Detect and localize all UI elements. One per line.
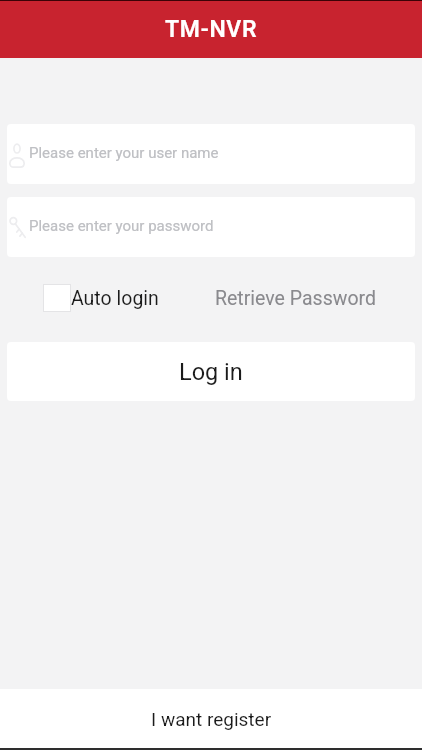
staticText: TM-NVR: [165, 16, 258, 43]
other: User name: [9, 141, 25, 168]
other: Password: [9, 215, 26, 239]
button[interactable]: Log in: [7, 342, 415, 401]
staticText: Retrieve Password: [215, 287, 376, 310]
button[interactable]: User name: [7, 124, 415, 184]
button[interactable]: I want register: [0, 689, 422, 748]
staticText: Auto login: [71, 287, 159, 310]
staticText: Please enter your user name: [29, 144, 219, 162]
button[interactable]: Auto login: [43, 284, 159, 312]
staticText: Log in: [179, 358, 243, 386]
button[interactable]: Retrieve Password: [215, 287, 376, 310]
staticText: Please enter your password: [29, 217, 214, 235]
button[interactable]: Password: [7, 197, 415, 257]
staticText: I want register: [151, 708, 272, 730]
